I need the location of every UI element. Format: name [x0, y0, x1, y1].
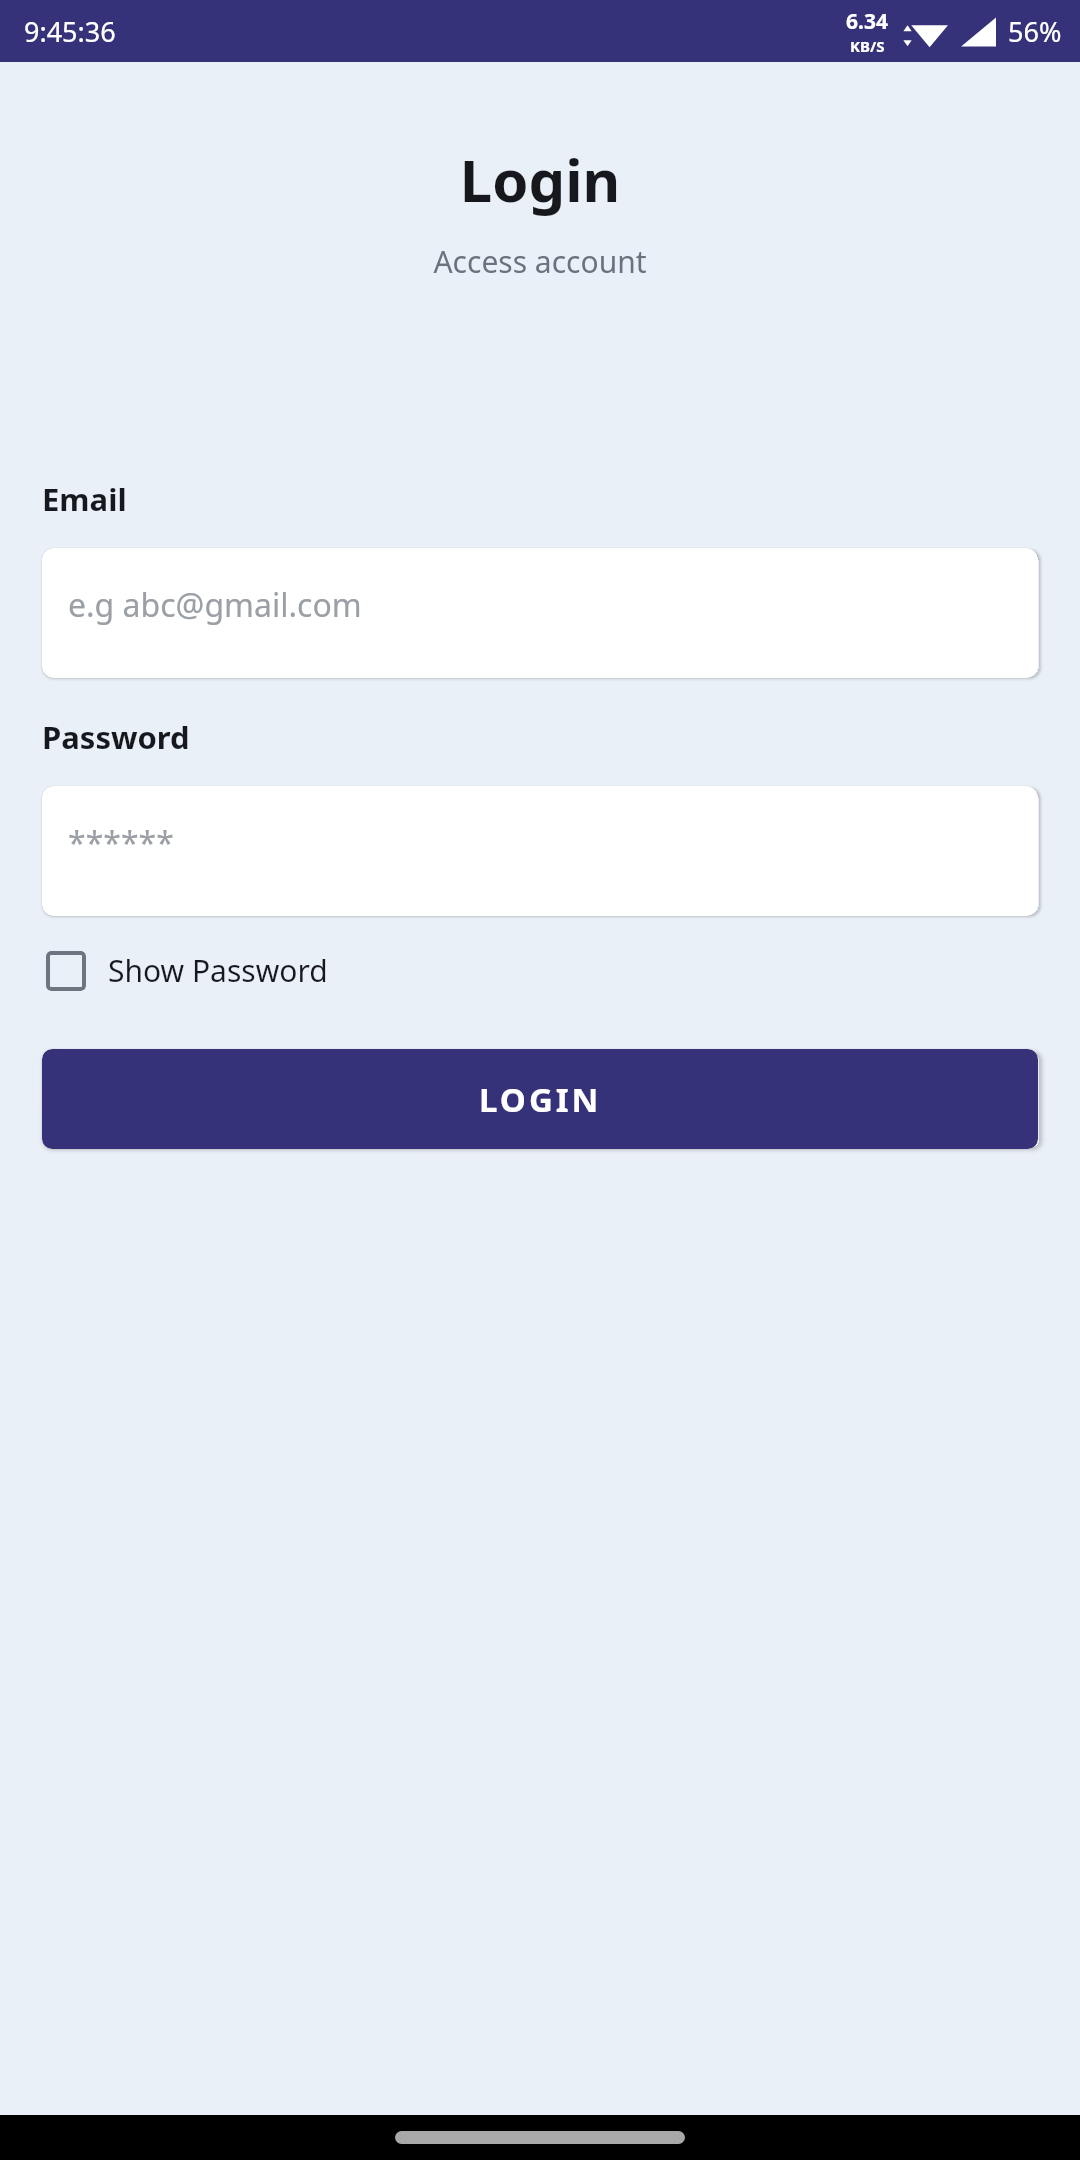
staticText: Access account [0, 241, 1080, 282]
staticText: 6.34 [846, 7, 888, 36]
staticText: Login [0, 140, 1080, 219]
staticText: Password [42, 716, 190, 758]
staticText: 56% [1008, 13, 1062, 50]
staticText: ****** [68, 821, 174, 865]
button[interactable]: LOGIN [42, 1049, 1038, 1149]
button[interactable]: Email input [42, 548, 1038, 678]
button[interactable]: Password input [42, 786, 1038, 916]
staticText: 9:45:36 [24, 13, 116, 50]
button[interactable]: Show Password [42, 944, 332, 997]
staticText: LOGIN [479, 1077, 602, 1122]
staticText: KB/S [850, 36, 885, 56]
staticText: Email [42, 478, 127, 520]
staticText: e.g abc@gmail.com [68, 583, 362, 627]
staticText: Show Password [108, 950, 328, 991]
